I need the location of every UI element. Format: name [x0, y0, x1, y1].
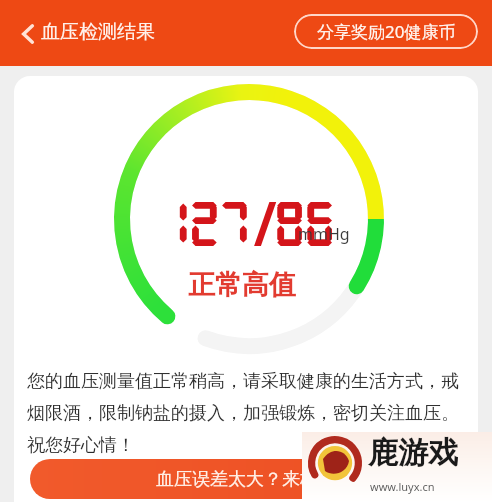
staticText: 血压误差太大？来校准 [156, 468, 336, 491]
staticText: 血压检测结果 [41, 20, 155, 44]
staticText: 鹿游戏 [368, 434, 458, 472]
staticText: 您的血压测量值正常稍高，请采取健康的生活方式，戒烟限酒，限制钠盐的摄入，加强锻炼… [27, 370, 471, 456]
staticText: 分享奖励20健康币 [317, 20, 456, 43]
staticText: mmHg [298, 223, 350, 245]
button[interactable]: Back [8, 14, 48, 54]
staticText: 正常高值 [188, 268, 296, 302]
staticText: www.luyx.cn [370, 479, 435, 494]
button[interactable]: 血压误差太大？来校准 [30, 459, 462, 499]
button[interactable]: 分享奖励20健康币 [294, 14, 478, 49]
